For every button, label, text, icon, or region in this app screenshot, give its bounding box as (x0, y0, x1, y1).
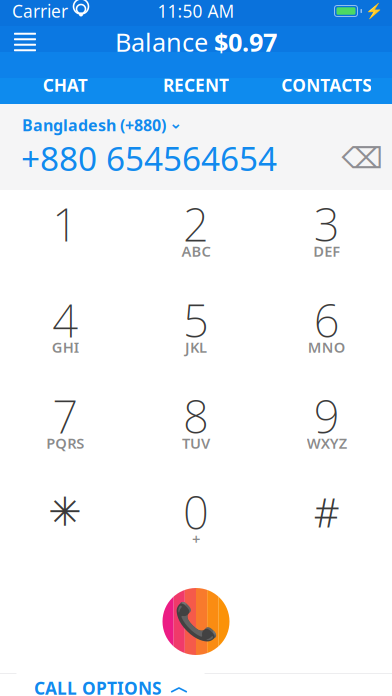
staticText: GHI (52, 337, 79, 357)
staticText: +880 654564654 (21, 136, 277, 180)
staticText: 📞 (173, 601, 218, 642)
staticText: MNO (308, 337, 346, 357)
staticText: ⚡ (365, 3, 383, 19)
staticText: ⌄ (169, 114, 182, 132)
staticText: 6 (314, 290, 340, 350)
staticText: $0.97 (214, 25, 277, 59)
button[interactable]: 1 (0, 202, 131, 260)
staticText: JKL (185, 337, 207, 357)
button[interactable]: Call (162, 588, 229, 655)
staticText: CONTACTS (281, 73, 372, 96)
staticText: CALL OPTIONS (34, 676, 162, 696)
staticText: 5 (183, 290, 209, 350)
button[interactable]: # (261, 490, 392, 548)
staticText: 0 (183, 482, 209, 542)
staticText: PQRS (46, 433, 84, 453)
staticText: 1 (52, 194, 78, 254)
button[interactable]: CONTACTS (261, 68, 392, 102)
staticText: 9 (314, 386, 340, 446)
button[interactable]: Menu (3, 22, 47, 62)
staticText: ⌫ (341, 141, 382, 175)
staticText: Balance (115, 25, 208, 59)
staticText: WXYZ (307, 433, 347, 453)
button[interactable]: 4 (0, 298, 131, 356)
button[interactable]: 7 (0, 394, 131, 452)
staticText: TUV (182, 433, 210, 453)
button[interactable]: ✳ (0, 490, 131, 548)
button[interactable]: 8 (131, 394, 261, 452)
button[interactable]: 9 (261, 394, 392, 452)
staticText: Bangladesh (+880) (22, 114, 166, 136)
button[interactable]: 6 (261, 298, 392, 356)
button[interactable]: CALL OPTIONS (12, 662, 209, 696)
staticText: 11:50 AM (157, 0, 234, 22)
staticText: ︿ (170, 675, 189, 696)
staticText: ✳ (48, 489, 82, 535)
staticText: Carrier (12, 0, 68, 22)
button[interactable]: RECENT (131, 68, 261, 102)
staticText: ABC (181, 241, 210, 261)
button[interactable]: Bangladesh (+880) (0, 116, 392, 134)
button[interactable]: 0 (131, 490, 261, 548)
staticText: + (192, 529, 200, 549)
button[interactable]: CHAT (0, 68, 131, 102)
staticText: RECENT (163, 73, 229, 96)
staticText: 3 (314, 194, 340, 254)
staticText: 4 (52, 290, 78, 350)
staticText: CHAT (43, 73, 88, 96)
staticText: 8 (183, 386, 209, 446)
staticText: DEF (313, 241, 340, 261)
button[interactable]: 5 (131, 298, 261, 356)
staticText: 7 (52, 386, 78, 446)
staticText: # (314, 485, 340, 538)
button[interactable]: 2 (131, 202, 261, 260)
staticText: 2 (183, 194, 209, 254)
button[interactable]: Delete (340, 140, 384, 176)
button[interactable]: 3 (261, 202, 392, 260)
